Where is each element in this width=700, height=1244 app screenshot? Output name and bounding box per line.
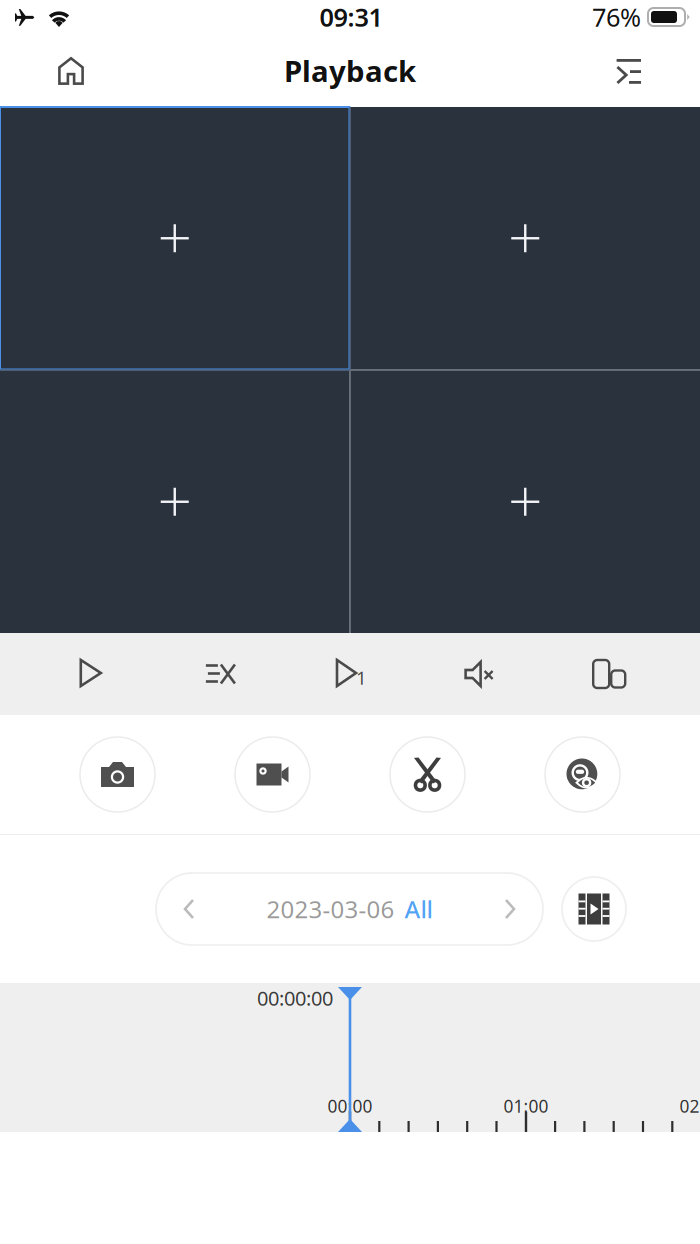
button[interactable]: Speed bbox=[285, 633, 415, 715]
button[interactable]: Home bbox=[0, 48, 104, 103]
staticText: 1 bbox=[356, 665, 367, 690]
button[interactable]: Clips bbox=[562, 877, 626, 941]
button[interactable]: Fisheye bbox=[545, 737, 620, 812]
button[interactable]: Mute bbox=[415, 633, 544, 715]
staticText: 00:00 bbox=[327, 1094, 372, 1117]
button[interactable]: Clip bbox=[390, 737, 465, 812]
button[interactable]: Snapshot bbox=[80, 737, 155, 812]
staticText: 76% bbox=[592, 0, 641, 34]
button[interactable]: 2023-03-06 bbox=[156, 873, 543, 945]
staticText: 00:00:00 bbox=[257, 985, 333, 1011]
button[interactable]: Playlist bbox=[596, 48, 700, 103]
button[interactable]: Record bbox=[235, 737, 310, 812]
button[interactable]: Stop all bbox=[156, 633, 285, 715]
staticText: All bbox=[404, 893, 432, 925]
staticText: Playback bbox=[284, 51, 416, 90]
button[interactable] bbox=[350, 107, 700, 369]
button[interactable] bbox=[0, 370, 349, 633]
button[interactable]: Play bbox=[26, 633, 156, 715]
staticText: 02:00 bbox=[679, 1094, 700, 1117]
staticText: 09:31 bbox=[319, 0, 382, 34]
button[interactable] bbox=[350, 370, 700, 633]
button[interactable]: Rotate bbox=[544, 633, 674, 715]
staticText: 01:00 bbox=[503, 1094, 548, 1117]
button[interactable] bbox=[0, 107, 349, 369]
staticText: 2023-03-06 bbox=[266, 893, 394, 925]
